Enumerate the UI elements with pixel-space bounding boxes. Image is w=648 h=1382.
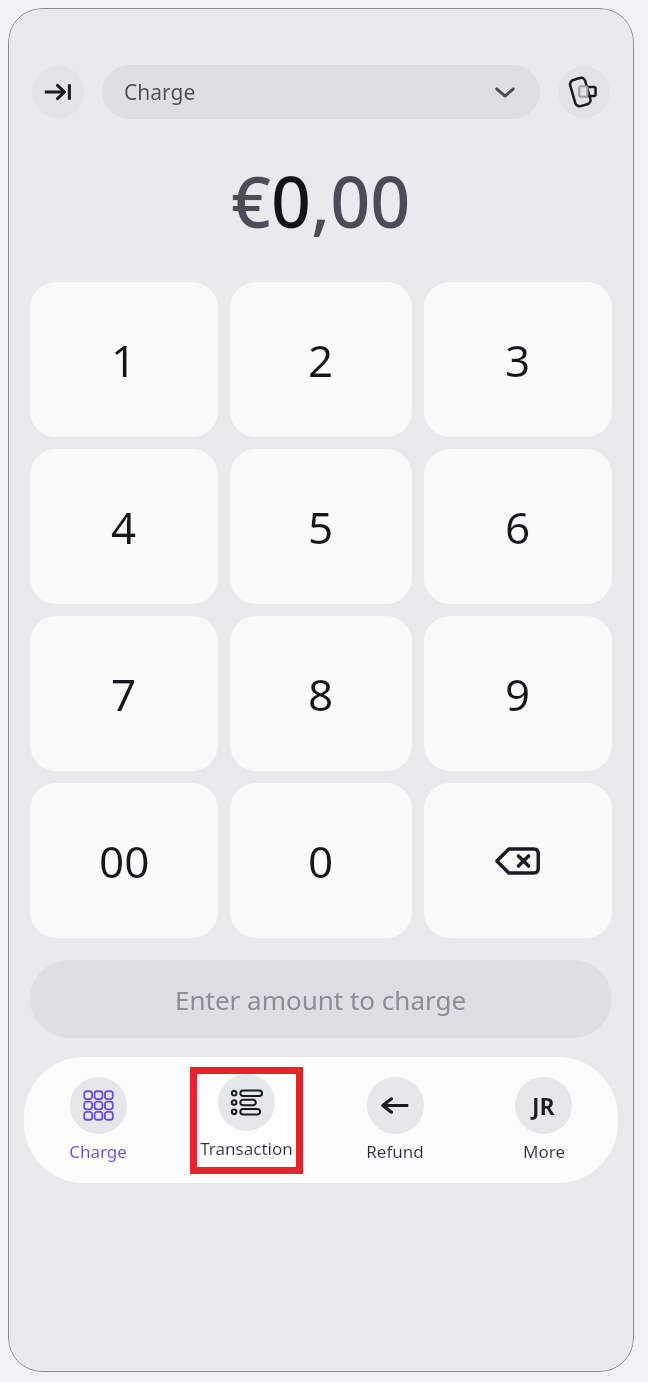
button[interactable]: Charge (102, 65, 540, 119)
button[interactable]: 0 (230, 783, 412, 938)
button[interactable]: Delete (424, 783, 612, 938)
button[interactable]: Refund (366, 1077, 424, 1163)
staticText: JR (532, 1090, 555, 1121)
button[interactable]: 5 (230, 449, 412, 604)
staticText: €0,00 (231, 153, 411, 248)
button[interactable]: 9 (424, 616, 612, 771)
staticText: 6 (505, 497, 531, 557)
button[interactable]: Enter amount to charge (30, 960, 612, 1038)
button[interactable]: Transactions (197, 1074, 296, 1167)
staticText: More (523, 1140, 565, 1163)
button[interactable]: 6 (424, 449, 612, 604)
staticText: Enter amount to charge (175, 982, 467, 1017)
button[interactable]: 00 (30, 783, 218, 938)
staticText: 1 (111, 330, 137, 390)
button[interactable]: 8 (230, 616, 412, 771)
staticText: 8 (308, 664, 334, 724)
button[interactable]: 1 (30, 282, 218, 437)
button[interactable]: 7 (30, 616, 218, 771)
staticText: 9 (505, 664, 531, 724)
staticText: Refund (366, 1140, 424, 1163)
staticText: 2 (308, 330, 334, 390)
button[interactable]: Exit (32, 66, 84, 118)
staticText: 5 (308, 497, 334, 557)
button[interactable]: Charge (69, 1077, 127, 1163)
button[interactable]: Tap to pay (558, 66, 610, 118)
staticText: Charge (124, 78, 196, 107)
button[interactable]: JR (515, 1077, 572, 1163)
staticText: 0 (308, 831, 334, 891)
staticText: 3 (505, 330, 531, 390)
staticText: Transactions (197, 1137, 296, 1167)
button[interactable]: 3 (424, 282, 612, 437)
button[interactable]: 2 (230, 282, 412, 437)
staticText: 00 (99, 831, 150, 891)
staticText: 7 (111, 664, 137, 724)
staticText: 4 (111, 497, 137, 557)
staticText: Charge (69, 1140, 127, 1163)
button[interactable]: 4 (30, 449, 218, 604)
